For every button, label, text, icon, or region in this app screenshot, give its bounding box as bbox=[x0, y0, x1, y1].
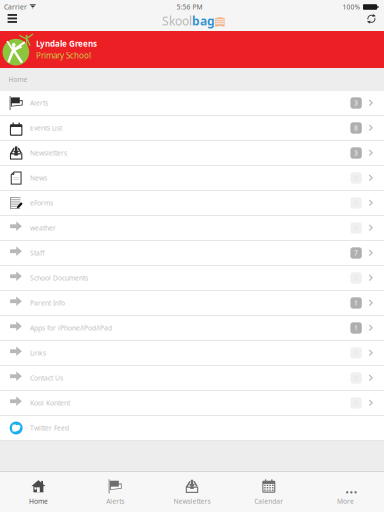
button[interactable]: eForms bbox=[0, 191, 384, 216]
button[interactable]: weather bbox=[0, 216, 384, 241]
button[interactable]: Parent Info bbox=[0, 291, 384, 316]
button[interactable]: More bbox=[307, 471, 384, 512]
button[interactable]: Links bbox=[0, 341, 384, 366]
staticText: More bbox=[337, 497, 354, 506]
staticText: 1 bbox=[354, 324, 358, 332]
staticText: weather bbox=[30, 224, 56, 232]
staticText: Alerts bbox=[106, 497, 124, 506]
staticText: Kool Kontent bbox=[30, 399, 70, 407]
staticText: 7 bbox=[354, 249, 358, 257]
staticText: Contact Us bbox=[30, 374, 63, 382]
staticText: 0 bbox=[354, 399, 358, 407]
staticText: 0 bbox=[354, 199, 358, 207]
staticText: Primary School bbox=[36, 50, 91, 61]
button[interactable]: Alerts bbox=[0, 91, 384, 116]
staticText: News bbox=[30, 174, 47, 182]
button[interactable]: Alerts bbox=[77, 471, 154, 512]
staticText: Skool bbox=[162, 13, 192, 29]
button[interactable]: Staff bbox=[0, 241, 384, 266]
staticText: 100% bbox=[342, 3, 360, 11]
button[interactable]: Apps for iPhone/iPod/iPad bbox=[0, 316, 384, 341]
staticText: 0 bbox=[354, 174, 358, 182]
staticText: Carrier bbox=[4, 3, 27, 11]
staticText: bag bbox=[192, 13, 215, 29]
staticText: 1 bbox=[354, 299, 358, 307]
staticText: 0 bbox=[354, 349, 358, 357]
staticText: School Documents bbox=[30, 274, 88, 282]
button[interactable]: Events List bbox=[0, 116, 384, 141]
staticText: Calendar bbox=[254, 497, 283, 506]
staticText: Staff bbox=[30, 249, 45, 257]
staticText: 0 bbox=[354, 374, 358, 382]
staticText: Newsletters bbox=[30, 149, 67, 157]
button[interactable]: Newsletters bbox=[154, 471, 230, 512]
staticText: Events List bbox=[30, 124, 62, 132]
staticText: Newsletters bbox=[173, 497, 210, 506]
staticText: Apps for iPhone/iPod/iPad bbox=[30, 324, 112, 332]
staticText: 8 bbox=[354, 124, 358, 132]
button[interactable]: Refresh bbox=[365, 14, 378, 31]
staticText: Twitter Feed bbox=[30, 424, 69, 432]
staticText: Home bbox=[29, 497, 48, 506]
button[interactable]: Kool Kontent bbox=[0, 391, 384, 416]
staticText: 3 bbox=[354, 149, 358, 157]
staticText: 5:56 PM bbox=[176, 3, 202, 11]
staticText: 3 bbox=[354, 99, 358, 107]
staticText: Home bbox=[8, 75, 27, 84]
staticText: Links bbox=[30, 349, 46, 357]
staticText: Alerts bbox=[30, 99, 48, 107]
button[interactable]: Home bbox=[0, 471, 77, 512]
staticText: eForms bbox=[30, 199, 53, 207]
button[interactable]: Menu bbox=[7, 14, 22, 31]
staticText: Lyndale Greens bbox=[36, 38, 97, 49]
button[interactable]: School Documents bbox=[0, 266, 384, 291]
button[interactable]: Calendar bbox=[230, 471, 307, 512]
button[interactable]: Newsletters bbox=[0, 141, 384, 166]
staticText: 0 bbox=[354, 274, 358, 282]
button[interactable]: News bbox=[0, 166, 384, 191]
button[interactable]: Twitter Feed bbox=[0, 416, 384, 441]
staticText: Parent Info bbox=[30, 299, 65, 307]
button[interactable]: Contact Us bbox=[0, 366, 384, 391]
staticText: 0 bbox=[354, 224, 358, 232]
